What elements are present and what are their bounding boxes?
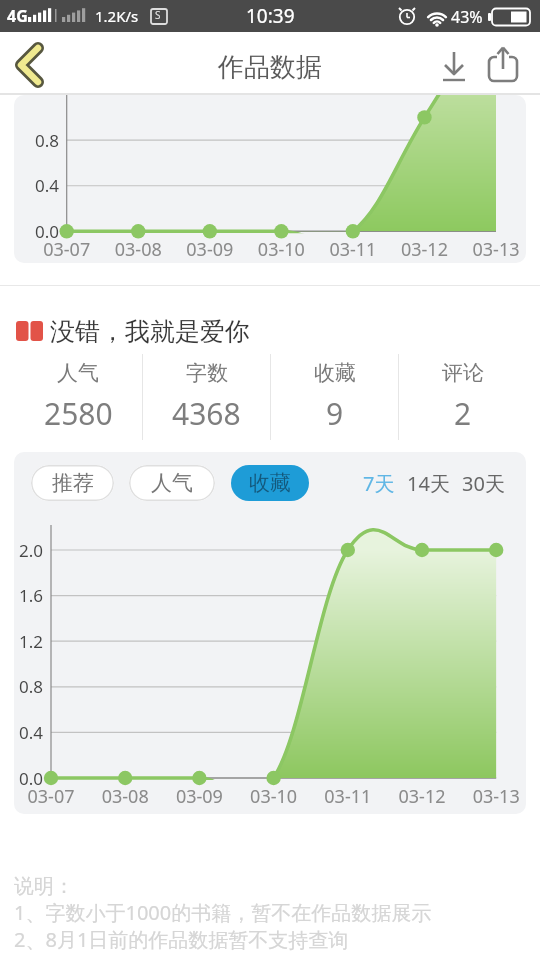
staticText: 推荐 [52,470,94,496]
button[interactable] [436,46,474,84]
staticText: 1、字数小于1000的书籍，暂不在作品数据展示 [14,899,432,926]
staticText: 43% [451,6,483,28]
staticText: 9 [326,393,344,434]
staticText: 10:39 [246,3,295,29]
button[interactable]: 推荐 [31,465,114,501]
staticText: 2、8月1日前的作品数据暂不支持查询 [14,926,349,953]
staticText: 评论 [442,360,484,386]
staticText: 作品数据 [218,51,322,84]
staticText: 人气 [57,360,99,386]
button[interactable]: 人气 [129,465,215,501]
staticText: 2 [454,393,472,434]
staticText: 2580 [44,393,113,434]
staticText: S [155,8,161,22]
staticText: 4368 [172,393,241,434]
button[interactable]: 30天 [462,470,505,497]
staticText: 收藏 [314,360,356,386]
button[interactable] [484,44,524,84]
staticText: 收藏 [249,470,291,496]
staticText: 没错，我就是爱你 [50,316,250,347]
staticText: 说明： [14,874,74,899]
button[interactable] [8,38,52,82]
button[interactable]: 14天 [407,470,450,497]
staticText: 1.2K/s [95,6,139,26]
staticText: 字数 [186,360,228,386]
staticText: 人气 [151,470,193,496]
button[interactable]: 7天 [363,470,395,497]
button[interactable]: 收藏 [231,465,309,501]
staticText: 4G [7,5,28,27]
button[interactable]: 没错，我就是爱你 [16,315,540,347]
